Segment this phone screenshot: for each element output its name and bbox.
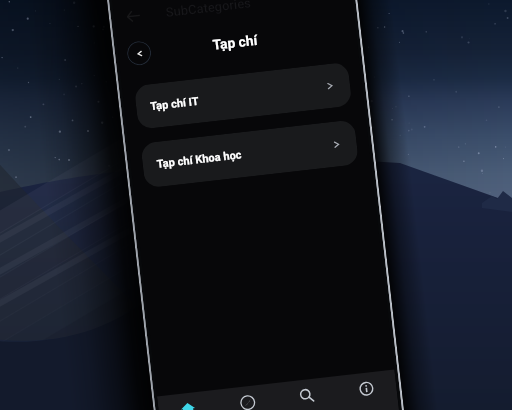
button[interactable]: Back [121,3,145,28]
staticText: Tạp chí IT [149,95,200,113]
button[interactable]: Explore [216,391,281,410]
button[interactable]: Tạp chí Khoa học [140,119,359,188]
button[interactable]: Navigate back [126,40,152,66]
button[interactable]: Tạp chí IT [134,62,352,130]
staticText: Tạp chí Khoa học [156,148,243,171]
button[interactable]: Home [158,398,221,410]
staticText: Tạp chí [212,32,258,53]
button[interactable]: Information [336,377,400,410]
button[interactable]: Search [276,384,340,410]
staticText: SubCategories [165,0,252,20]
